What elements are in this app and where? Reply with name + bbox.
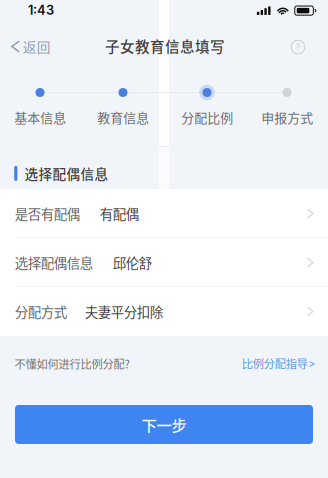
- staticText: 不懂如何进行比例分配?: [15, 355, 130, 372]
- staticText: 教育信息: [97, 108, 149, 126]
- staticText: 子女教育信息填写: [105, 35, 225, 56]
- button[interactable]: 返回: [1, 29, 61, 64]
- staticText: 基本信息: [14, 108, 66, 126]
- staticText: 申报方式: [261, 108, 313, 126]
- staticText: ?: [295, 41, 300, 52]
- staticText: 夫妻平分扣除: [85, 302, 163, 321]
- staticText: 分配比例: [181, 108, 233, 126]
- button[interactable]: Help: [283, 32, 312, 61]
- staticText: 返回: [23, 37, 51, 56]
- button[interactable]: 下一步: [15, 405, 313, 444]
- staticText: 选择配偶信息: [25, 164, 109, 183]
- staticText: 是否有配偶: [15, 204, 80, 223]
- staticText: 邱伦舒: [113, 253, 152, 272]
- staticText: 下一步: [141, 413, 186, 436]
- staticText: 选择配偶信息: [15, 253, 93, 272]
- staticText: >: [308, 357, 315, 370]
- button[interactable]: 比例分配指导: [234, 348, 321, 378]
- staticText: 有配偶: [100, 204, 139, 223]
- button[interactable]: 分配方式: [0, 287, 328, 336]
- staticText: 比例分配指导: [242, 355, 308, 371]
- staticText: 1:43: [28, 2, 54, 18]
- button[interactable]: 选择配偶信息: [0, 238, 328, 287]
- staticText: 分配方式: [15, 302, 67, 321]
- button[interactable]: 是否有配偶: [0, 189, 328, 238]
